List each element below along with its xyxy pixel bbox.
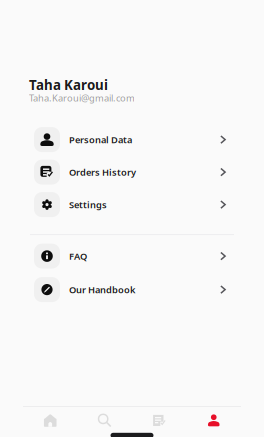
- button[interactable]: Orders History: [0, 160, 264, 185]
- button[interactable]: Search: [77, 413, 132, 428]
- button[interactable]: Personal Data: [0, 127, 264, 152]
- staticText: Our Handbook: [69, 283, 135, 296]
- staticText: Taha Karoui: [29, 76, 108, 94]
- button[interactable]: Home: [23, 413, 77, 428]
- staticText: Settings: [69, 198, 107, 211]
- button[interactable]: Settings: [0, 192, 264, 217]
- button[interactable]: FAQ: [0, 244, 264, 269]
- button[interactable]: Profile: [186, 413, 241, 428]
- staticText: Taha.Karoui@gmail.com: [29, 92, 135, 104]
- staticText: FAQ: [69, 250, 87, 262]
- staticText: Personal Data: [69, 133, 132, 146]
- button[interactable]: Orders: [132, 413, 186, 428]
- staticText: Orders History: [69, 166, 136, 178]
- button[interactable]: Our Handbook: [0, 277, 264, 302]
